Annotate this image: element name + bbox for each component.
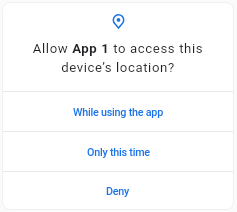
button[interactable]: Only this time [2,132,234,171]
staticText: Allow App 1 to access this device’s loca… [2,41,234,75]
staticText: Deny [106,185,130,198]
staticText: While using the app [73,106,163,119]
button[interactable]: Deny [2,172,234,209]
button[interactable]: While using the app [2,92,234,131]
staticText: Only this time [87,146,150,159]
